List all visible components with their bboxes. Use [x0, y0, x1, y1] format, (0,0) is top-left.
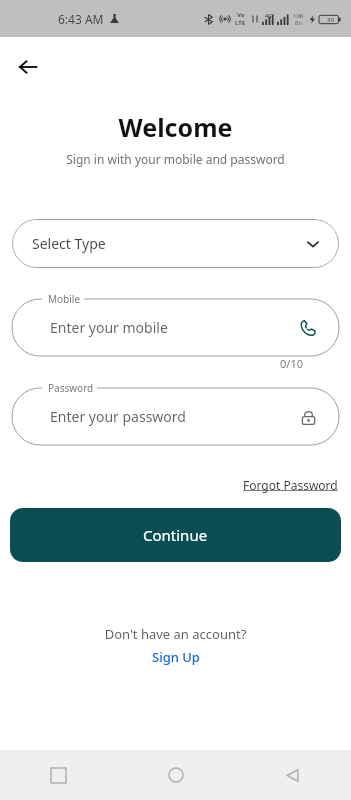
staticText: Select Type — [32, 234, 106, 253]
staticText: B/s — [295, 20, 303, 27]
staticText: Forgot Password — [243, 477, 338, 493]
staticText: 0/10 — [0, 356, 303, 371]
button[interactable]: Phone — [297, 317, 319, 339]
staticText: 4G — [265, 13, 272, 20]
staticText: Mobile — [48, 292, 81, 306]
button[interactable]: Recents — [0, 750, 117, 800]
staticText: Vo — [237, 11, 245, 19]
button[interactable]: Password — [297, 406, 319, 428]
button[interactable]: Continue — [10, 508, 341, 562]
button[interactable]: Home — [117, 750, 234, 800]
button[interactable]: Sign Up — [146, 647, 206, 667]
staticText: Enter your password — [50, 407, 186, 426]
staticText: 39 — [327, 16, 334, 24]
staticText: LTE — [235, 19, 246, 27]
button[interactable]: Back — [10, 49, 46, 85]
staticText: Welcome — [0, 110, 351, 144]
button[interactable]: Select Type — [12, 219, 339, 268]
staticText: Sign in with your mobile and password — [0, 151, 351, 167]
staticText: Continue — [143, 525, 208, 545]
staticText: 6:43 AM — [58, 11, 104, 27]
button[interactable]: Back — [234, 750, 351, 800]
staticText: Sign Up — [152, 648, 200, 666]
staticText: Enter your mobile — [50, 318, 168, 337]
button[interactable]: Forgot Password — [241, 475, 340, 495]
staticText: 106 — [293, 12, 304, 20]
staticText: Password — [48, 381, 94, 395]
staticText: Don't have an account? — [0, 625, 351, 643]
